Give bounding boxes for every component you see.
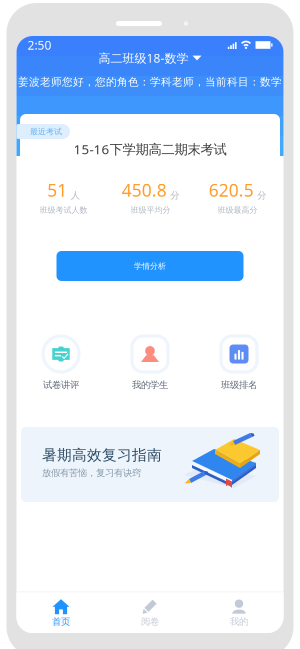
staticText: 450.8 xyxy=(122,178,167,201)
staticText: 2:50 xyxy=(27,37,51,53)
staticText: 620.5 xyxy=(209,178,254,201)
button[interactable]: 暑期高效复习指南 xyxy=(21,427,279,502)
staticText: 51 xyxy=(47,178,67,201)
button[interactable]: 班级排名 xyxy=(194,337,283,393)
staticText: 我的 xyxy=(230,616,248,627)
staticText: 15-16下学期高二期末考试 xyxy=(73,140,226,158)
staticText: 人 xyxy=(71,189,80,201)
staticText: 首页 xyxy=(52,616,70,627)
button[interactable]: 学情分析 xyxy=(56,251,243,281)
button[interactable]: 阅卷 xyxy=(105,592,194,633)
staticText: 放假有苦恼，复习有诀窍 xyxy=(42,467,141,479)
staticText: 班级最高分 xyxy=(217,205,257,215)
button[interactable]: 高二班级18-数学 xyxy=(16,50,283,66)
staticText: 阅卷 xyxy=(141,616,159,627)
staticText: 暑期高效复习指南 xyxy=(42,446,162,464)
staticText: 分 xyxy=(257,189,266,201)
staticText: 高二班级18-数学 xyxy=(98,50,188,66)
staticText: 最近考试 xyxy=(30,127,62,136)
staticText: 班级排名 xyxy=(221,379,257,391)
button[interactable]: 首页 xyxy=(16,592,105,633)
staticText: 学情分析 xyxy=(134,261,166,271)
button[interactable]: 我的 xyxy=(194,592,283,633)
staticText: 班级考试人数 xyxy=(39,205,87,215)
button[interactable]: 试卷讲评 xyxy=(16,337,105,393)
staticText: 分 xyxy=(170,189,179,201)
button[interactable]: 我的学生 xyxy=(105,337,194,393)
staticText: 班级平均分 xyxy=(130,205,170,215)
staticText: 我的学生 xyxy=(132,379,168,391)
staticText: 试卷讲评 xyxy=(43,379,79,391)
staticText: 姜波老师您好，您的角色：学科老师，当前科目：数学 xyxy=(18,75,282,88)
